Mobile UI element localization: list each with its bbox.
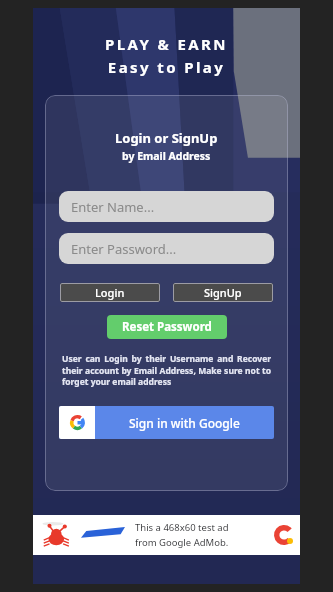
button[interactable]: Enter Name...	[59, 191, 274, 222]
staticText: Enter Password...	[71, 240, 177, 258]
button[interactable]: SignUp	[173, 283, 273, 302]
button[interactable]: Google logo	[59, 406, 274, 439]
staticText: from Google AdMob.	[135, 536, 229, 549]
staticText: PLAY & EARN	[33, 34, 300, 54]
staticText: This a 468x60 test ad	[135, 521, 229, 534]
staticText: Reset Password	[122, 319, 212, 335]
staticText: Easy to Play	[33, 57, 300, 77]
staticText: by Email Address	[122, 149, 211, 163]
staticText: SignUp	[204, 285, 242, 300]
staticText: Login or SignUp	[115, 129, 218, 147]
button[interactable]: Login	[60, 283, 160, 302]
button[interactable]: Enter Password...	[59, 233, 274, 264]
staticText: Sign in with Google	[129, 415, 240, 431]
staticText: User can Login by their Username and Rec…	[62, 353, 271, 388]
staticText: Enter Name...	[71, 198, 155, 216]
button[interactable]: This a 468x60 test ad	[33, 515, 300, 555]
other: Google logo	[70, 415, 85, 430]
button[interactable]: Reset Password	[107, 315, 227, 339]
staticText: Login	[95, 285, 125, 300]
